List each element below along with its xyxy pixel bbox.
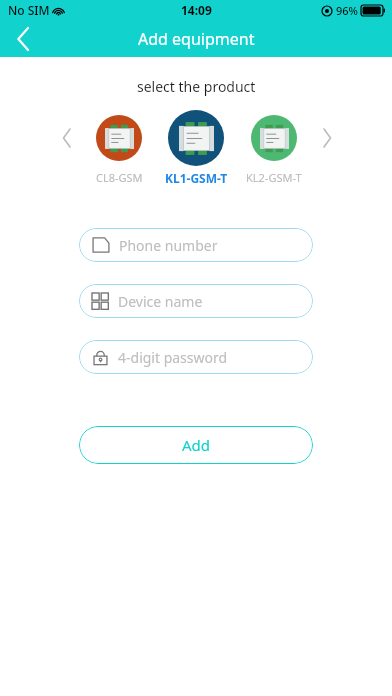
staticText: No SIM	[8, 2, 50, 18]
button[interactable]: Device name	[79, 284, 313, 318]
button[interactable]: Phone number	[79, 228, 313, 262]
staticText: KL2-GSM-T	[246, 170, 302, 184]
staticText: CL8-GSM	[96, 170, 143, 184]
button[interactable]: KL1-GSM-T	[160, 110, 232, 184]
button[interactable]: Add	[79, 426, 313, 464]
button[interactable]: Back	[0, 20, 46, 57]
button[interactable]: 4-digit password	[79, 340, 313, 374]
staticText: Add	[182, 435, 211, 455]
staticText: Device name	[118, 292, 203, 311]
staticText: Phone number	[119, 236, 218, 255]
staticText: KL1-GSM-T	[165, 170, 228, 184]
staticText: 4-digit password	[118, 348, 228, 367]
staticText: 14:09	[181, 2, 212, 18]
staticText: select the product	[137, 77, 256, 96]
staticText: Add equipment	[138, 28, 255, 50]
button[interactable]: Next	[316, 110, 338, 166]
button[interactable]: KL2-GSM-T	[238, 110, 310, 184]
button[interactable]: CL8-GSM	[83, 110, 155, 184]
button[interactable]: Previous	[56, 110, 78, 166]
staticText: 96%	[336, 3, 358, 18]
